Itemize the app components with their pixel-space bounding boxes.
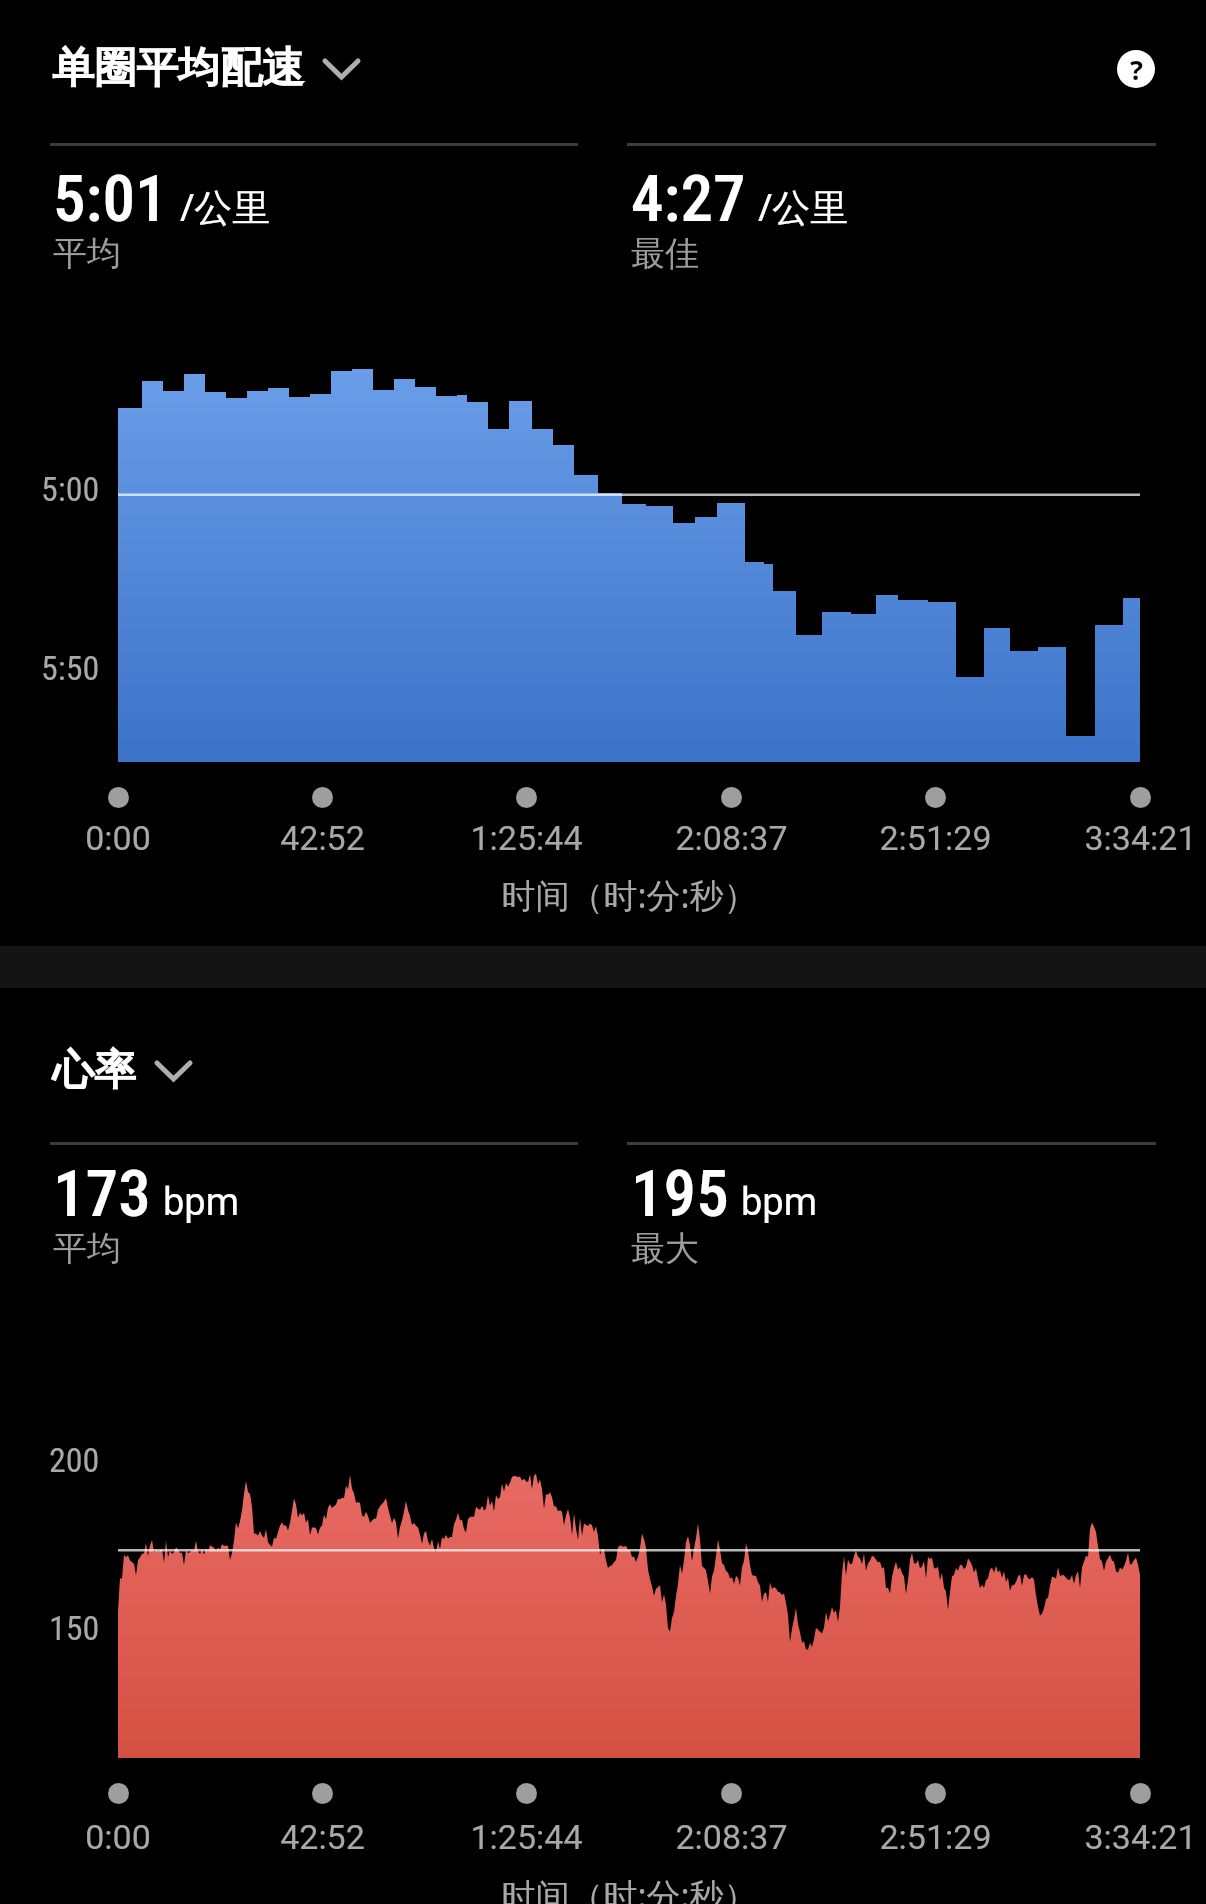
staticText: 平均: [53, 232, 121, 275]
staticText: /公里: [180, 180, 271, 232]
staticText: 最佳: [631, 232, 699, 275]
button[interactable]: 心率: [52, 1044, 191, 1097]
staticText: 3:34:21: [1084, 818, 1197, 858]
staticText: 心率: [52, 1044, 136, 1097]
button[interactable]: 单圈平均配速: [52, 42, 359, 95]
staticText: 2:08:37: [675, 818, 788, 858]
staticText: 195: [631, 1156, 729, 1232]
staticText: bpm: [163, 1180, 239, 1225]
staticText: 4:27: [631, 161, 746, 237]
staticText: 5:01: [53, 161, 168, 237]
staticText: 42:52: [280, 1817, 365, 1857]
staticText: 0:00: [85, 818, 151, 858]
staticText: 5:00: [41, 469, 100, 509]
staticText: 单圈平均配速: [52, 42, 304, 95]
staticText: 2:51:29: [879, 1817, 992, 1857]
button[interactable]: ?: [1117, 50, 1155, 88]
staticText: 5:50: [41, 648, 100, 688]
staticText: 3:34:21: [1084, 1817, 1197, 1857]
staticText: /公里: [758, 180, 849, 232]
staticText: 1:25:44: [470, 818, 583, 858]
staticText: 时间（时:分:秒）: [501, 1872, 758, 1904]
staticText: 2:51:29: [879, 818, 992, 858]
staticText: 2:08:37: [675, 1817, 788, 1857]
staticText: 200: [49, 1440, 100, 1480]
staticText: 1:25:44: [470, 1817, 583, 1857]
staticText: ?: [1130, 51, 1143, 88]
staticText: 150: [49, 1608, 100, 1648]
staticText: bpm: [741, 1180, 817, 1225]
staticText: 0:00: [85, 1817, 151, 1857]
staticText: 时间（时:分:秒）: [501, 872, 758, 918]
staticText: 平均: [53, 1227, 121, 1270]
staticText: 最大: [631, 1227, 699, 1270]
staticText: 42:52: [280, 818, 365, 858]
staticText: 173: [53, 1156, 151, 1232]
